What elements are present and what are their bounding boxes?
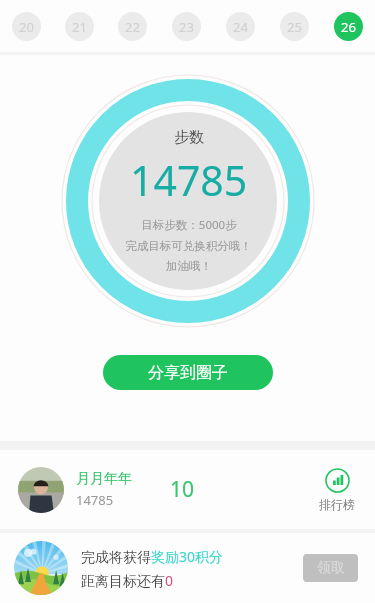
button[interactable]: 排行榜	[309, 468, 365, 512]
button[interactable]: 分享到圈子	[103, 355, 273, 390]
button[interactable]: 24	[226, 12, 255, 41]
staticText: 分享到圈子	[148, 363, 228, 383]
staticText: 月月年年	[76, 470, 132, 488]
button[interactable]: 23	[172, 12, 201, 41]
staticText: 14785	[76, 491, 114, 509]
staticText: 完成目标可兑换积分哦！	[125, 239, 252, 253]
button[interactable]: 月月年年	[0, 450, 375, 529]
button[interactable]: 领取	[303, 554, 358, 582]
staticText: 26	[341, 18, 356, 36]
staticText: 20	[19, 18, 34, 36]
staticText: 25	[287, 18, 302, 36]
staticText: 10	[170, 475, 195, 504]
button[interactable]: 21	[65, 12, 94, 41]
staticText: 14785	[130, 152, 248, 208]
button[interactable]: 20	[12, 12, 41, 41]
staticText: 步数	[174, 128, 204, 147]
button[interactable]: 25	[280, 12, 309, 41]
staticText: 23	[179, 18, 194, 36]
staticText: 排行榜	[319, 497, 355, 512]
staticText: 完成将获得奖励30积分	[81, 547, 224, 566]
staticText: 24	[233, 18, 248, 36]
staticText: 21	[72, 18, 87, 36]
staticText: 目标步数：5000步	[141, 217, 237, 233]
staticText: 22	[125, 18, 140, 36]
button[interactable]: 22	[118, 12, 147, 41]
staticText: 加油哦！	[166, 259, 212, 273]
button[interactable]: 26	[334, 12, 363, 41]
staticText: 领取	[317, 559, 345, 577]
staticText: 距离目标还有0	[81, 571, 174, 590]
